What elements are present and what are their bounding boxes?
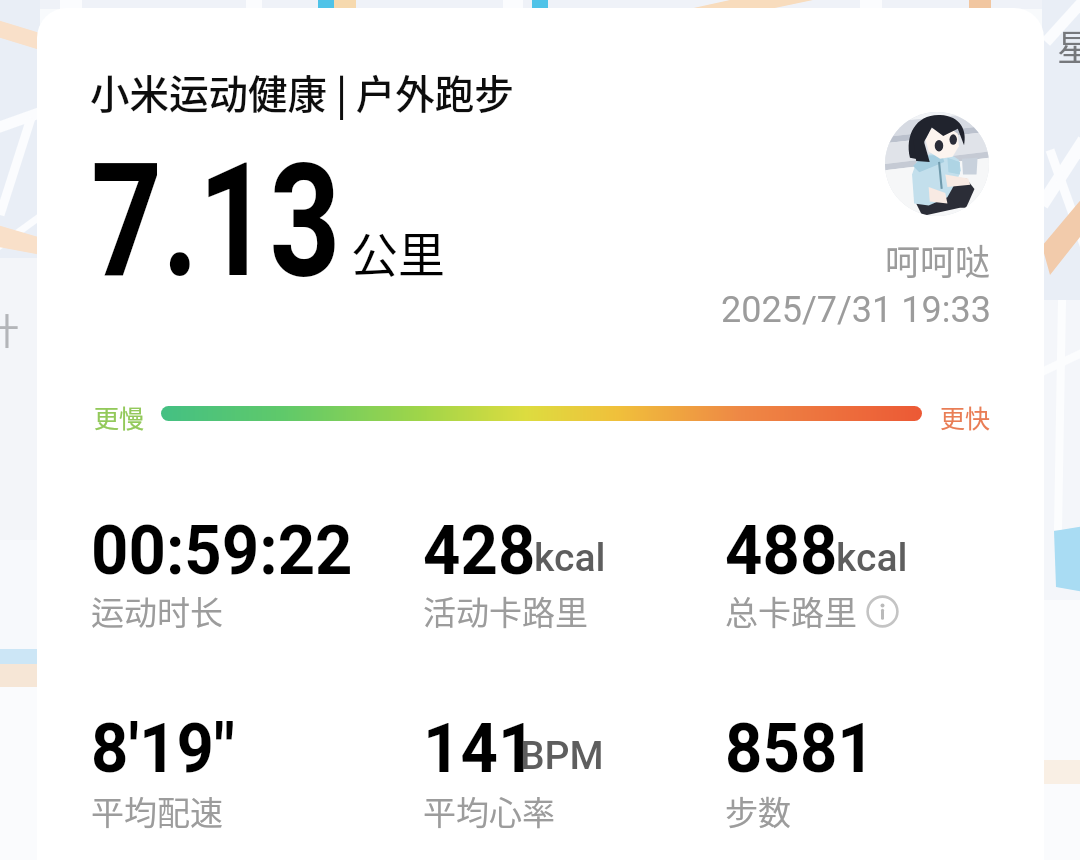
staticText: 运动时长 xyxy=(91,587,223,635)
staticText: kcal xyxy=(836,535,908,581)
staticText: kcal xyxy=(534,535,606,581)
staticText: BPM xyxy=(520,733,604,779)
button[interactable]: User avatar xyxy=(885,112,989,216)
staticText: 小米运动健康 | 户外跑步 xyxy=(90,63,514,120)
staticText: 8'19" xyxy=(91,709,235,789)
staticText: 公里 xyxy=(351,217,445,285)
staticText: 呵呵哒 xyxy=(885,234,991,285)
staticText: 141 xyxy=(423,709,536,789)
staticText: 计 xyxy=(0,303,20,355)
staticText: 488 xyxy=(725,511,838,591)
staticText: 星 xyxy=(1057,19,1080,71)
staticText: 8581 xyxy=(725,709,876,789)
staticText: 7.13 xyxy=(91,129,341,313)
staticText: 平均配速 xyxy=(91,787,223,835)
staticText: 更快 xyxy=(940,399,991,435)
staticText: 428 xyxy=(423,511,536,591)
staticText: 活动卡路里 xyxy=(423,587,588,635)
staticText: 2025/7/31 19:33 xyxy=(721,289,991,331)
staticText: 更慢 xyxy=(94,399,145,435)
staticText: 平均心率 xyxy=(423,787,555,835)
staticText: 00:59:22 xyxy=(91,511,353,591)
staticText: 总卡路里 xyxy=(725,587,857,635)
button[interactable]: Total calories info xyxy=(866,595,899,628)
staticText: 步数 xyxy=(725,787,791,835)
